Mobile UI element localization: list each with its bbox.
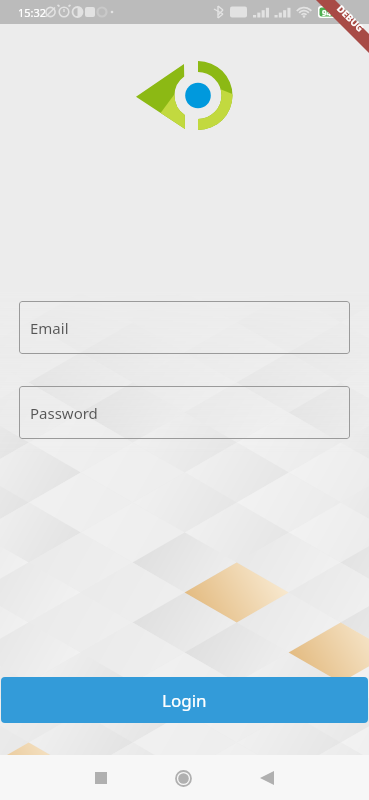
button[interactable]: Recent apps bbox=[79, 756, 123, 800]
button[interactable]: Email bbox=[19, 301, 350, 354]
staticText: Password bbox=[30, 403, 98, 423]
staticText: Login bbox=[162, 689, 207, 712]
button[interactable]: Password bbox=[19, 386, 350, 439]
button[interactable]: Login bbox=[1, 677, 368, 723]
staticText: 15:32 bbox=[18, 5, 47, 20]
staticText: DEBUG bbox=[334, 2, 367, 35]
button[interactable]: Back bbox=[245, 756, 289, 800]
button[interactable]: Home bbox=[161, 756, 205, 800]
staticText: 94 bbox=[322, 7, 332, 18]
staticText: Email bbox=[30, 318, 69, 338]
